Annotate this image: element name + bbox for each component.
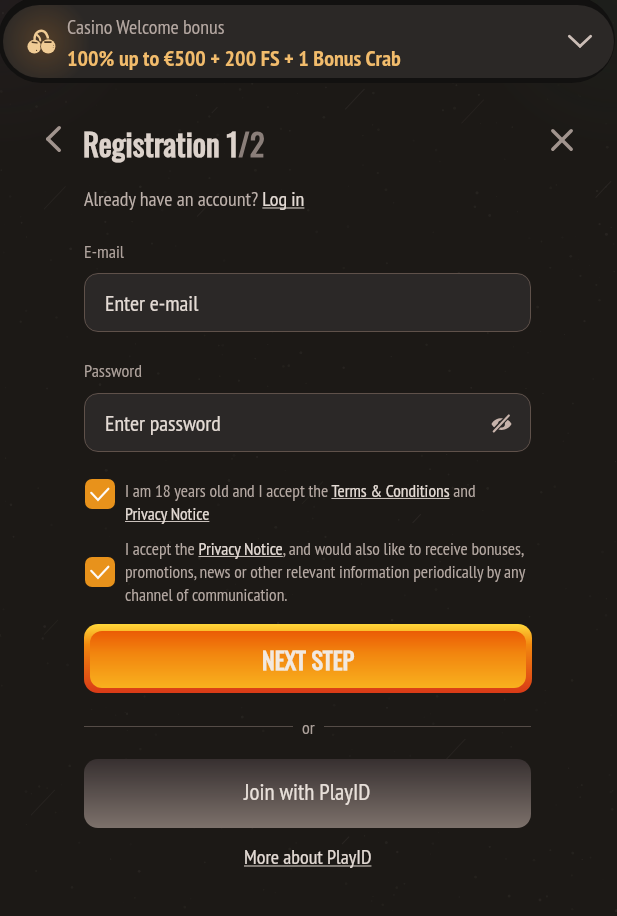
button[interactable]: Back: [36, 122, 70, 156]
button[interactable]: Enter password: [84, 393, 531, 452]
staticText: NEXT STEP: [262, 641, 354, 677]
button[interactable]: I accept the Privacy Notice, and would a…: [85, 537, 531, 606]
staticText: or: [302, 716, 315, 739]
button[interactable]: Casino Welcome bonus: [3, 5, 614, 78]
button[interactable]: Already have an account? Log in: [84, 186, 305, 212]
button[interactable]: NEXT STEP: [84, 624, 532, 693]
button[interactable]: More about PlayID: [244, 844, 372, 870]
staticText: E-mail: [84, 240, 124, 263]
button[interactable]: Close: [546, 124, 578, 156]
button[interactable]: I am 18 years old and I accept the Terms…: [85, 479, 531, 525]
staticText: Registration 1/2: [83, 120, 265, 166]
button[interactable]: [85, 479, 115, 509]
staticText: I accept the Privacy Notice, and would a…: [125, 537, 529, 606]
staticText: I am 18 years old and I accept the Terms…: [125, 479, 497, 525]
button[interactable]: Show password: [484, 406, 518, 440]
button[interactable]: Expand bonus: [561, 22, 599, 60]
staticText: Enter e-mail: [105, 289, 199, 317]
staticText: 100% up to €500 + 200 FS + 1 Bonus Crab: [67, 44, 401, 72]
button[interactable]: Enter e-mail: [84, 273, 531, 332]
button[interactable]: Join with PlayID: [84, 759, 531, 828]
staticText: Join with PlayID: [244, 777, 371, 807]
button[interactable]: [85, 557, 115, 587]
staticText: Enter password: [105, 409, 221, 437]
staticText: Password: [84, 359, 142, 382]
staticText: Casino Welcome bonus: [67, 14, 225, 40]
